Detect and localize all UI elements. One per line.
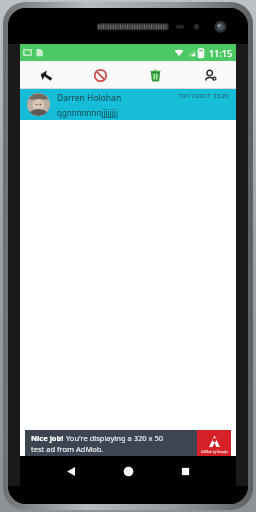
button[interactable]: Back [60, 460, 82, 482]
button[interactable]: Darren Holohan [20, 89, 236, 120]
button[interactable]: Block sender [88, 63, 112, 87]
staticText: Darren Holohan [57, 92, 122, 104]
staticText: qgnnnnnnnjjjjjjjj [57, 107, 118, 118]
staticText: 11:15 [209, 47, 233, 59]
button[interactable]: Recent apps [174, 460, 196, 482]
staticText: You're displaying a 320 x 50 [66, 433, 163, 443]
button[interactable]: Back [34, 63, 58, 87]
staticText: Nice job! [31, 433, 64, 443]
button[interactable]: Add contact [198, 63, 222, 87]
staticText: test ad from AdMob. [31, 444, 104, 454]
staticText: AdMob by Google [201, 450, 228, 454]
button[interactable]: Advertisement [25, 430, 231, 456]
button[interactable]: Delete [143, 63, 167, 87]
button[interactable]: Home [117, 460, 139, 482]
staticText: 10/11/2017 23:20 [178, 92, 229, 100]
